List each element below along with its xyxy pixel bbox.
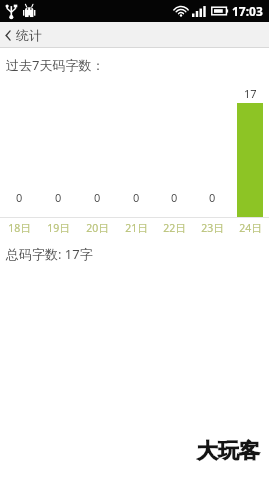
- staticText: 大玩客: [197, 438, 260, 464]
- button[interactable]: 0: [78, 86, 117, 217]
- staticText: 23日: [201, 221, 224, 235]
- staticText: 总码字数: 17字: [6, 245, 93, 263]
- staticText: 21日: [125, 221, 148, 235]
- button[interactable]: 0: [155, 86, 193, 217]
- staticText: 0: [94, 190, 101, 205]
- staticText: 0: [209, 190, 216, 205]
- staticText: 22日: [163, 221, 186, 235]
- staticText: 24日: [239, 221, 262, 235]
- staticText: 17:03: [232, 3, 263, 19]
- staticText: 过去7天码字数：: [6, 56, 105, 74]
- staticText: 0: [133, 190, 140, 205]
- button[interactable]: 17: [231, 86, 269, 217]
- button[interactable]: Back: [0, 22, 54, 48]
- staticText: 0: [171, 190, 178, 205]
- button[interactable]: 0: [0, 86, 39, 217]
- staticText: 20日: [86, 221, 109, 235]
- button[interactable]: 0: [193, 86, 231, 217]
- button[interactable]: 0: [117, 86, 155, 217]
- staticText: 17: [244, 86, 257, 101]
- staticText: 0: [55, 190, 62, 205]
- staticText: 18日: [8, 221, 31, 235]
- staticText: 统计: [16, 27, 42, 43]
- staticText: 0: [16, 190, 23, 205]
- button[interactable]: 0: [39, 86, 78, 217]
- staticText: 19日: [47, 221, 70, 235]
